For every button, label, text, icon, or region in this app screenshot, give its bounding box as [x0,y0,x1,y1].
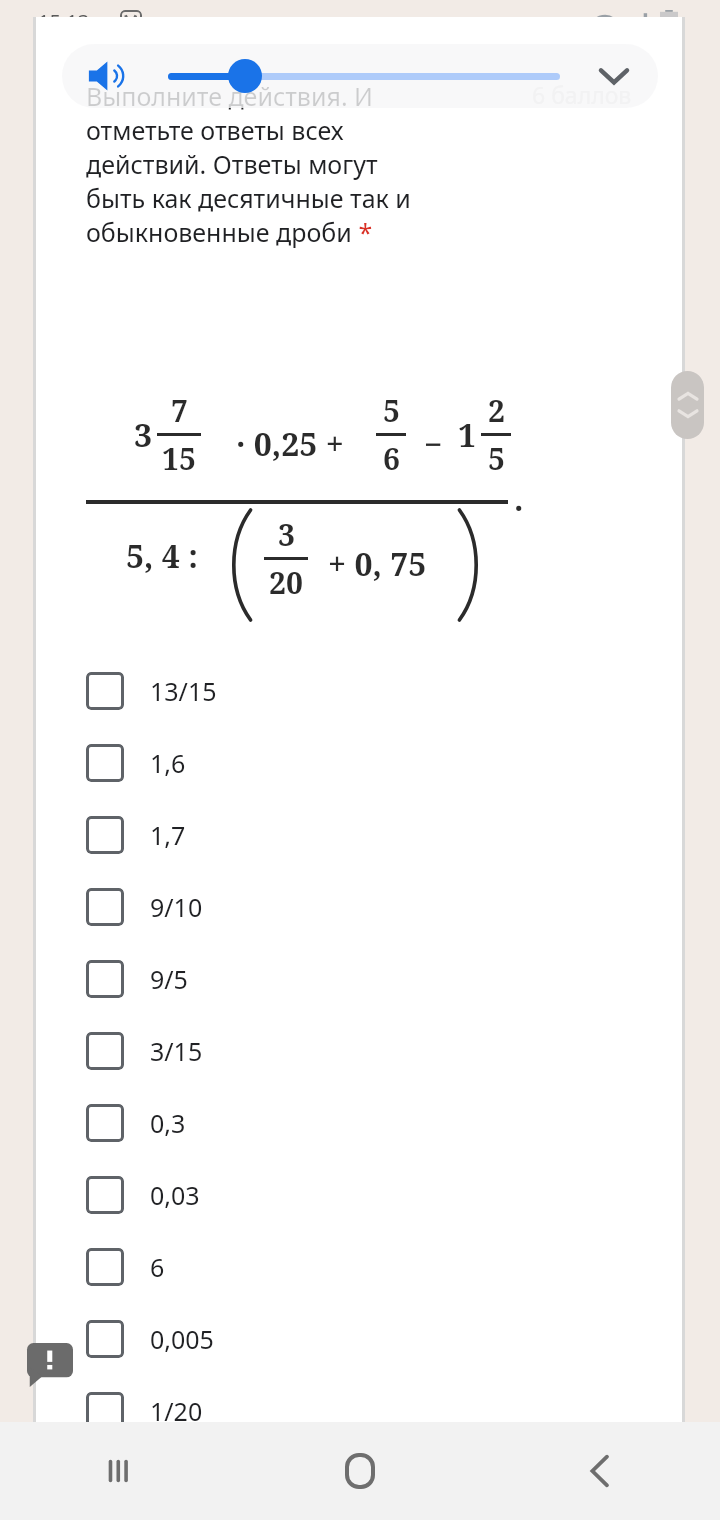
staticText: * [352,215,373,249]
staticText: 5 [383,390,400,431]
staticText: − [424,422,443,466]
staticText: 2 [488,390,505,431]
button[interactable]: 6 [36,1231,682,1303]
button[interactable]: 3/15 [36,1015,682,1087]
staticText: 5, 4 : [126,534,198,578]
staticText: 6 [383,438,400,479]
staticText: 6 баллов [532,79,632,110]
staticText: 1 [458,413,477,457]
button[interactable]: Volume slider [228,59,262,93]
staticText: 3/15 [150,1034,203,1068]
staticText: 7 [171,390,188,431]
staticText: 9/5 [150,962,188,996]
button[interactable]: 9/10 [36,871,682,943]
staticText: 20 [269,562,303,603]
button[interactable]: Recent apps [0,1422,240,1520]
button[interactable]: 1/20 [36,1375,682,1447]
staticText: Выполните действия. И [86,79,374,113]
staticText: обыкновенные дроби [86,215,352,249]
button[interactable]: 0,005 [36,1303,682,1375]
button[interactable]: Scroll [671,371,704,439]
staticText: отметьте ответы всех [86,113,344,147]
staticText: 5 [488,438,505,479]
staticText: . [514,477,524,521]
staticText: 13/15 [150,674,217,708]
staticText: 9/10 [150,890,203,924]
button[interactable]: 1,7 [36,799,682,871]
staticText: 1,7 [150,818,186,852]
staticText: действий. Ответы могут [86,147,378,181]
staticText: 1,6 [150,746,186,780]
staticText: 15:13 [38,8,90,35]
staticText: 1/20 [150,1394,203,1428]
staticText: 0,005 [150,1322,214,1356]
staticText: быть как десятичные так и [86,181,411,215]
button[interactable]: 1,6 [36,727,682,799]
button[interactable]: Back [480,1422,720,1520]
button[interactable]: 0,03 [36,1159,682,1231]
staticText: 3 [134,413,153,457]
staticText: 3 [278,514,295,555]
button[interactable]: 9/5 [36,943,682,1015]
staticText: · 0,25 + [236,422,344,466]
staticText: 6 [150,1250,165,1284]
button[interactable]: Home [240,1422,480,1520]
button[interactable]: Report a problem [27,1343,73,1387]
button[interactable]: 13/15 [36,655,682,727]
staticText: 0,03 [150,1178,200,1212]
staticText: + 0, 75 [328,542,427,586]
button[interactable]: Expand volume controls [592,54,636,98]
staticText: 0,3 [150,1106,186,1140]
staticText: 15 [162,438,196,479]
button[interactable]: 0,3 [36,1087,682,1159]
button[interactable]: Volume [88,60,132,92]
